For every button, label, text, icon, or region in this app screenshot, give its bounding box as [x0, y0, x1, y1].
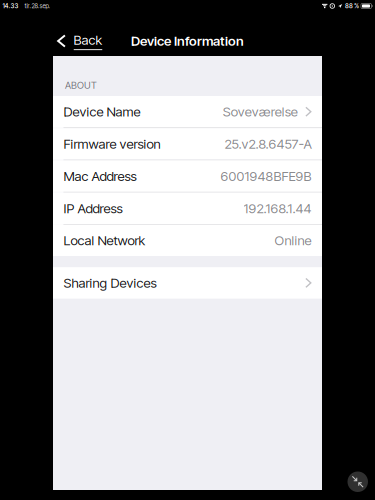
staticText: 6001948BFE9B: [220, 168, 311, 184]
button[interactable]: Sharing Devices: [53, 267, 322, 299]
staticText: Firmware version: [63, 136, 160, 152]
button[interactable]: Back: [57, 30, 102, 52]
staticText: Mac Address: [63, 168, 136, 184]
staticText: IP Address: [63, 200, 122, 216]
button[interactable]: Firmware version: [53, 128, 322, 160]
button[interactable]: Mac Address: [53, 160, 322, 192]
staticText: Device Name: [63, 104, 140, 120]
staticText: 192.168.1.44: [243, 200, 311, 216]
staticText: 14.33: [3, 2, 19, 10]
staticText: Soveværelse: [223, 104, 298, 120]
staticText: Online: [274, 232, 311, 248]
staticText: ABOUT: [65, 79, 97, 91]
button[interactable]: Device Name: [53, 96, 322, 127]
staticText: 88 %: [345, 2, 359, 10]
button[interactable]: Exit full screen: [347, 471, 368, 492]
button[interactable]: Local Network: [53, 225, 322, 256]
staticText: Back: [73, 32, 102, 48]
staticText: tir. 28. sep.: [25, 2, 50, 10]
staticText: Local Network: [63, 232, 145, 248]
staticText: 25.v2.8.6457-A: [224, 136, 311, 152]
staticText: Sharing Devices: [63, 275, 156, 291]
button[interactable]: IP Address: [53, 193, 322, 224]
staticText: Device Information: [131, 33, 244, 49]
